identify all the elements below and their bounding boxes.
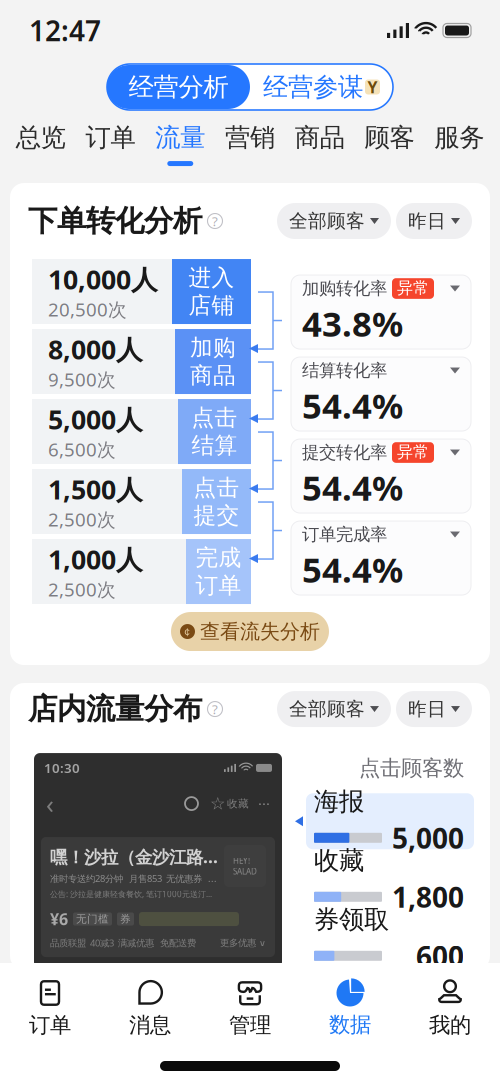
- staticText: 9,500次: [48, 367, 116, 392]
- staticText: 提交转化率: [302, 442, 387, 463]
- staticText: 流量: [155, 122, 205, 153]
- button[interactable]: 结算转化率: [291, 357, 471, 431]
- staticText: 数据: [329, 1011, 371, 1038]
- staticText: 点击: [193, 474, 239, 501]
- staticText: 海报: [314, 786, 364, 817]
- staticText: 订单完成率: [302, 524, 387, 545]
- staticText: 经营分析: [128, 71, 228, 102]
- staticText: 异常: [397, 278, 429, 298]
- button[interactable]: 服务: [424, 122, 494, 166]
- button[interactable]: 数据: [300, 979, 400, 1038]
- staticText: 进入: [188, 264, 234, 291]
- staticText: Y: [367, 76, 377, 98]
- staticText: 消息: [129, 1012, 171, 1038]
- staticText: 嘿！沙拉（金沙江路店）: [50, 845, 218, 868]
- staticText: 结算转化率: [302, 360, 387, 381]
- staticText: 6,500次: [48, 437, 116, 462]
- button[interactable]: 消息: [100, 979, 200, 1038]
- staticText: 点击: [191, 404, 237, 431]
- button[interactable]: 海报: [306, 793, 474, 849]
- button[interactable]: 昨日: [396, 203, 472, 239]
- staticText: 品质联盟 40减3 满减优惠 免配送费: [50, 937, 196, 949]
- button[interactable]: 我的: [400, 979, 500, 1038]
- staticText: 订单: [29, 1012, 71, 1038]
- staticText: 全部顾客: [289, 698, 365, 720]
- staticText: ¥6: [50, 908, 68, 930]
- staticText: 我的: [429, 1012, 471, 1038]
- button[interactable]: 经营分析: [107, 65, 250, 109]
- staticText: 结算: [191, 431, 237, 459]
- staticText: 商品: [295, 122, 345, 153]
- staticText: 店内流量分布: [28, 691, 202, 727]
- button[interactable]: 全部顾客: [277, 203, 391, 239]
- staticText: ￠: [182, 625, 193, 638]
- staticText: 8,000人: [48, 331, 143, 367]
- staticText: 收藏: [314, 845, 364, 876]
- staticText: 54.4%: [302, 464, 403, 510]
- button[interactable]: 总览: [6, 122, 76, 166]
- staticText: ···: [258, 794, 270, 813]
- staticText: 店铺: [188, 291, 234, 319]
- staticText: 订单: [86, 122, 136, 153]
- staticText: 1,800: [392, 878, 464, 915]
- staticText: 2,500次: [48, 507, 116, 532]
- button[interactable]: 订单: [0, 979, 100, 1038]
- staticText: 600: [416, 937, 464, 974]
- staticText: 完成: [195, 544, 241, 571]
- staticText: 10,000人: [48, 261, 158, 297]
- staticText: 昨日: [408, 210, 446, 232]
- button[interactable]: 券领取: [306, 911, 474, 967]
- button[interactable]: 流量: [145, 122, 215, 166]
- button[interactable]: 订单: [76, 122, 145, 166]
- staticText: 10:30: [44, 759, 80, 777]
- staticText: 加购: [190, 334, 236, 361]
- staticText: ☆: [210, 794, 226, 813]
- button[interactable]: 商品: [285, 122, 355, 166]
- staticText: 20,500次: [48, 297, 127, 322]
- staticText: 全部顾客: [289, 210, 365, 232]
- button[interactable]: 订单完成率: [291, 521, 471, 595]
- staticText: 服务: [434, 122, 484, 153]
- staticText: 异常: [397, 442, 429, 462]
- button[interactable]: 顾客: [355, 122, 424, 166]
- staticText: 1,500人: [48, 471, 143, 507]
- button[interactable]: 经营参谋: [250, 65, 393, 109]
- staticText: 昨日: [408, 698, 446, 720]
- button[interactable]: 提交转化率: [291, 439, 471, 513]
- staticText: ‹: [46, 787, 54, 820]
- staticText: 5,000人: [48, 401, 143, 437]
- staticText: 顾客: [364, 122, 414, 153]
- button[interactable]: 加购转化率: [291, 275, 471, 349]
- staticText: 券: [120, 912, 131, 926]
- staticText: 营销: [225, 122, 275, 153]
- staticText: 公告: 沙拉是健康轻食餐饮, 笔订1000元送汀单满额减20%: [50, 889, 218, 899]
- staticText: 提交: [193, 501, 239, 529]
- staticText: 5,000: [392, 819, 464, 856]
- staticText: 管理: [229, 1012, 271, 1038]
- staticText: 点击顾客数: [359, 755, 464, 781]
- button[interactable]: 全部顾客: [277, 691, 391, 727]
- staticText: 更多优惠 ∨: [220, 937, 266, 949]
- staticText: 下单转化分析: [28, 203, 202, 239]
- staticText: 2,500次: [48, 577, 116, 602]
- staticText: 12:47: [29, 12, 101, 49]
- staticText: 券领取: [314, 904, 389, 935]
- staticText: HEY! SALAD: [233, 855, 257, 877]
- staticText: 收藏: [227, 797, 249, 810]
- staticText: 总览: [16, 122, 66, 153]
- button[interactable]: 营销: [215, 122, 285, 166]
- staticText: 54.4%: [302, 382, 403, 428]
- staticText: 查看流失分析: [200, 619, 320, 644]
- staticText: 加购转化率: [302, 278, 387, 299]
- staticText: 54.4%: [302, 546, 403, 592]
- staticText: 无门槛: [76, 912, 109, 926]
- staticText: ?: [212, 212, 218, 230]
- staticText: 经营参谋: [263, 71, 363, 102]
- staticText: 准时专送约28分钟 月售853 无优惠券 可自提: [50, 872, 218, 885]
- button[interactable]: 收藏: [306, 852, 474, 908]
- button[interactable]: ￠: [171, 612, 329, 651]
- staticText: 商品: [190, 361, 236, 389]
- button[interactable]: 管理: [200, 979, 300, 1038]
- button[interactable]: 昨日: [396, 691, 472, 727]
- staticText: 1,000人: [48, 541, 143, 577]
